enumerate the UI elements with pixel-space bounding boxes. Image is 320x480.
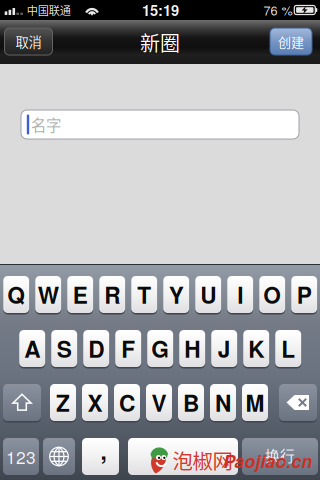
button[interactable]: Q bbox=[3, 276, 29, 313]
button[interactable]: E bbox=[67, 276, 93, 313]
staticText: 123 bbox=[6, 444, 36, 469]
staticText: V bbox=[151, 386, 166, 419]
staticText: F bbox=[121, 332, 135, 365]
button[interactable]: 123 bbox=[3, 438, 39, 475]
staticText: U bbox=[200, 278, 216, 311]
staticText: 新圈 bbox=[140, 28, 180, 57]
staticText: A bbox=[24, 332, 40, 365]
staticText: E bbox=[73, 278, 88, 311]
staticText: S bbox=[57, 332, 72, 365]
staticText: B bbox=[183, 386, 199, 419]
staticText: 名字 bbox=[31, 113, 61, 136]
button[interactable]: X bbox=[82, 384, 108, 421]
staticText: Q bbox=[7, 278, 25, 311]
button[interactable]: , bbox=[82, 438, 119, 475]
button[interactable]: W bbox=[35, 276, 61, 313]
staticText: D bbox=[88, 332, 104, 365]
button[interactable]: I bbox=[227, 276, 253, 313]
button[interactable]: Space bbox=[128, 438, 238, 475]
button[interactable]: R bbox=[99, 276, 125, 313]
button[interactable]: 取消 bbox=[4, 28, 52, 55]
button[interactable]: P bbox=[291, 276, 317, 313]
staticText: 中国联通 bbox=[27, 2, 71, 18]
staticText: G bbox=[151, 332, 169, 365]
button[interactable]: D bbox=[83, 330, 109, 367]
staticText: Z bbox=[56, 386, 70, 419]
button[interactable]: C bbox=[114, 384, 140, 421]
button[interactable]: Next keyboard bbox=[43, 438, 75, 475]
button[interactable]: A bbox=[19, 330, 45, 367]
button[interactable]: Delete bbox=[279, 384, 317, 421]
button[interactable]: 创建 bbox=[270, 28, 312, 55]
staticText: L bbox=[281, 332, 295, 365]
staticText: J bbox=[218, 332, 231, 365]
staticText: R bbox=[104, 278, 120, 311]
button[interactable]: Z bbox=[50, 384, 76, 421]
button[interactable]: O bbox=[259, 276, 285, 313]
staticText: 76 % bbox=[263, 1, 292, 19]
button[interactable]: K bbox=[243, 330, 269, 367]
staticText: , bbox=[100, 434, 106, 467]
button[interactable]: T bbox=[131, 276, 157, 313]
staticText: T bbox=[137, 278, 151, 311]
button[interactable]: S bbox=[51, 330, 77, 367]
button[interactable]: H bbox=[179, 330, 205, 367]
staticText: C bbox=[119, 386, 135, 419]
staticText: W bbox=[38, 278, 59, 311]
staticText: 创建 bbox=[278, 32, 304, 51]
button[interactable]: Shift bbox=[3, 384, 41, 421]
button[interactable]: N bbox=[210, 384, 236, 421]
staticText: X bbox=[87, 386, 102, 419]
button[interactable]: F bbox=[115, 330, 141, 367]
staticText: H bbox=[184, 332, 200, 365]
staticText: 换行 bbox=[265, 444, 295, 466]
button[interactable]: L bbox=[275, 330, 301, 367]
button[interactable]: B bbox=[178, 384, 204, 421]
staticText: 15:19 bbox=[142, 0, 179, 20]
staticText: 取消 bbox=[15, 32, 41, 51]
button[interactable]: U bbox=[195, 276, 221, 313]
button[interactable]: M bbox=[242, 384, 268, 421]
staticText: O bbox=[263, 278, 281, 311]
button[interactable]: J bbox=[211, 330, 237, 367]
button[interactable]: 名字 bbox=[21, 110, 299, 139]
staticText: Paojiao.cn bbox=[223, 449, 312, 473]
button[interactable]: G bbox=[147, 330, 173, 367]
staticText: M bbox=[245, 386, 264, 419]
staticText: N bbox=[215, 386, 231, 419]
button[interactable]: 换行 bbox=[242, 438, 318, 475]
staticText: P bbox=[297, 278, 312, 311]
button[interactable]: Y bbox=[163, 276, 189, 313]
staticText: K bbox=[248, 332, 264, 365]
staticText: I bbox=[237, 278, 243, 311]
staticText: 泡椒网 bbox=[172, 445, 232, 475]
staticText: Y bbox=[169, 278, 184, 311]
button[interactable]: V bbox=[146, 384, 172, 421]
